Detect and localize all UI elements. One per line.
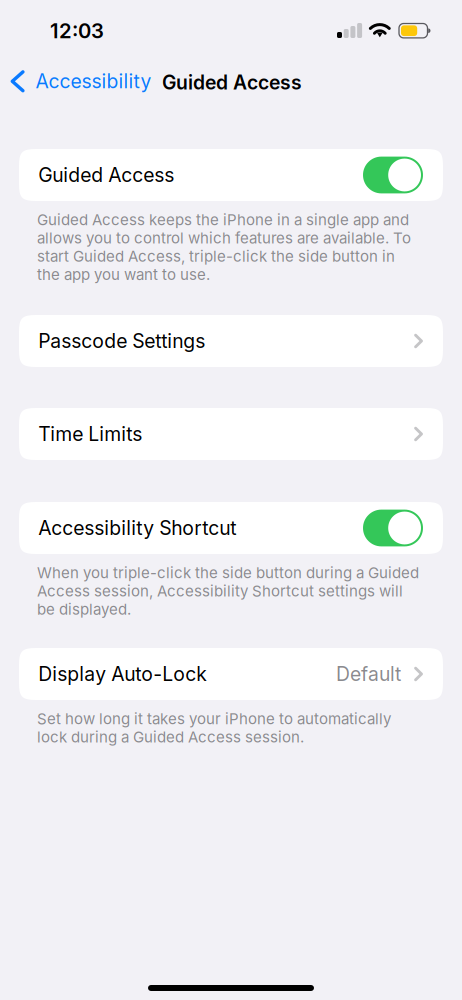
staticText: Display Auto-Lock <box>38 662 207 686</box>
staticText: Passcode Settings <box>38 329 205 353</box>
button[interactable]: Guided Access <box>19 149 443 201</box>
button[interactable]: Accessibility Shortcut <box>19 502 443 554</box>
staticText: When you triple-click the side button du… <box>37 564 419 618</box>
button[interactable]: Display Auto-Lock <box>19 648 443 700</box>
staticText: Guided Access <box>38 163 174 187</box>
staticText: Guided Access keeps the iPhone in a sing… <box>37 211 411 283</box>
staticText: Set how long it takes your iPhone to aut… <box>37 710 391 746</box>
button[interactable]: Time Limits <box>19 408 443 460</box>
staticText: Time Limits <box>38 422 142 446</box>
staticText: Default <box>336 662 401 686</box>
staticText: 12:03 <box>50 18 104 43</box>
staticText: Guided Access <box>162 71 302 94</box>
staticText: Accessibility <box>35 70 151 93</box>
button[interactable]: Accessibility <box>0 54 175 96</box>
staticText: Accessibility Shortcut <box>38 516 236 540</box>
button[interactable]: Passcode Settings <box>19 315 443 367</box>
